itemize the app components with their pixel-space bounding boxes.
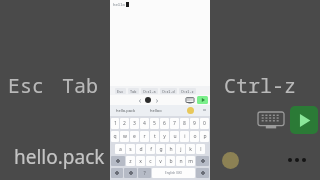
button[interactable]: Ctrl-z bbox=[179, 88, 196, 94]
button[interactable]: 8 bbox=[180, 118, 189, 129]
button[interactable]: Right bbox=[153, 97, 160, 104]
button[interactable]: Symbols bbox=[111, 168, 123, 178]
staticText: p bbox=[203, 133, 207, 140]
staticText: n bbox=[179, 158, 183, 165]
button[interactable]: g bbox=[156, 144, 165, 154]
button[interactable]: Esc bbox=[115, 88, 126, 94]
staticText: s bbox=[129, 146, 132, 153]
staticText: 1 bbox=[114, 120, 117, 127]
button[interactable]: ? bbox=[138, 168, 151, 178]
staticText: c bbox=[149, 158, 152, 165]
staticText: w bbox=[123, 133, 127, 140]
staticText: m bbox=[188, 158, 193, 165]
button[interactable]: m bbox=[186, 156, 195, 166]
staticText: u bbox=[173, 133, 177, 140]
button[interactable]: 0 bbox=[200, 118, 209, 129]
button[interactable]: c bbox=[146, 156, 155, 166]
button[interactable]: 9 bbox=[190, 118, 199, 129]
button[interactable]: s bbox=[126, 144, 135, 154]
button[interactable]: n bbox=[176, 156, 185, 166]
button[interactable]: Run bbox=[290, 106, 318, 134]
button[interactable]: q bbox=[111, 131, 119, 142]
staticText: h bbox=[169, 146, 173, 153]
staticText: 2 bbox=[123, 120, 126, 127]
button[interactable]: j bbox=[176, 144, 185, 154]
staticText: 5 bbox=[153, 120, 156, 127]
button[interactable]: Left bbox=[136, 97, 143, 104]
button[interactable]: y bbox=[160, 131, 169, 142]
button[interactable]: Select bbox=[145, 97, 151, 103]
button[interactable]: More suggestions bbox=[202, 108, 207, 113]
staticText: Ctrl-z bbox=[224, 72, 296, 99]
staticText: j bbox=[180, 146, 182, 153]
button[interactable]: h bbox=[166, 144, 175, 154]
button[interactable]: Toggle keyboard bbox=[186, 97, 194, 104]
staticText: f bbox=[150, 146, 152, 153]
button[interactable]: p bbox=[200, 131, 209, 142]
staticText: Ctrl-a bbox=[143, 89, 156, 94]
staticText: a bbox=[119, 146, 122, 153]
button[interactable]: 7 bbox=[170, 118, 179, 129]
button[interactable]: Ctrl-d bbox=[160, 88, 177, 94]
staticText: Esc bbox=[8, 72, 44, 99]
button[interactable]: i bbox=[180, 131, 189, 142]
button[interactable]: f bbox=[146, 144, 155, 154]
button[interactable]: v bbox=[156, 156, 165, 166]
button[interactable]: 3 bbox=[130, 118, 139, 129]
staticText: 4 bbox=[143, 120, 146, 127]
staticText: y bbox=[163, 133, 166, 140]
button[interactable]: 6 bbox=[160, 118, 169, 129]
button[interactable]: Backspace bbox=[196, 156, 209, 166]
button[interactable]: t bbox=[150, 131, 159, 142]
staticText: x bbox=[139, 158, 142, 165]
button[interactable]: x bbox=[136, 156, 145, 166]
button[interactable]: Space bbox=[152, 168, 195, 178]
staticText: t bbox=[154, 133, 156, 140]
staticText: 7 bbox=[173, 120, 176, 127]
button[interactable]: d bbox=[136, 144, 145, 154]
staticText: e bbox=[133, 133, 136, 140]
staticText: i bbox=[184, 133, 186, 140]
button[interactable]: Shift bbox=[111, 156, 125, 166]
button[interactable]: Emoji bbox=[124, 168, 137, 178]
button[interactable]: Run bbox=[197, 96, 208, 104]
button[interactable]: Emoji bbox=[222, 152, 239, 169]
staticText: ? bbox=[143, 170, 146, 177]
staticText: 6 bbox=[163, 120, 166, 127]
staticText: k bbox=[189, 146, 192, 153]
staticText: 9 bbox=[193, 120, 196, 127]
button[interactable]: Enter bbox=[196, 168, 209, 178]
staticText: z bbox=[129, 158, 132, 165]
button[interactable]: Tab bbox=[128, 88, 139, 94]
button[interactable]: k bbox=[186, 144, 195, 154]
staticText: Tab bbox=[130, 89, 137, 94]
button[interactable]: 1 bbox=[111, 118, 119, 129]
staticText: b bbox=[169, 158, 173, 165]
staticText: English (UK) bbox=[165, 171, 182, 175]
button[interactable]: Ctrl-a bbox=[141, 88, 158, 94]
button[interactable]: 2 bbox=[120, 118, 129, 129]
button[interactable]: o bbox=[190, 131, 199, 142]
button[interactable]: helloo bbox=[149, 107, 163, 114]
button[interactable]: z bbox=[126, 156, 135, 166]
staticText: Ctrl-z bbox=[181, 89, 194, 94]
staticText: hello.pack bbox=[116, 108, 136, 113]
button[interactable]: l bbox=[196, 144, 205, 154]
button[interactable]: hello.pack bbox=[115, 107, 137, 114]
button[interactable]: Keyboard bbox=[258, 110, 284, 130]
button[interactable]: a bbox=[115, 144, 125, 154]
staticText: hello.pack bbox=[14, 144, 105, 170]
button[interactable]: r bbox=[140, 131, 149, 142]
button[interactable]: Emoji bbox=[187, 107, 194, 114]
button[interactable]: e bbox=[130, 131, 139, 142]
staticText: 8 bbox=[183, 120, 186, 127]
button[interactable]: u bbox=[170, 131, 179, 142]
button[interactable]: b bbox=[166, 156, 175, 166]
button[interactable]: 5 bbox=[150, 118, 159, 129]
staticText: Tab bbox=[62, 72, 98, 99]
button[interactable]: w bbox=[120, 131, 129, 142]
button[interactable]: 4 bbox=[140, 118, 149, 129]
button[interactable]: More options bbox=[288, 158, 306, 162]
staticText: q bbox=[113, 133, 117, 140]
staticText: d bbox=[139, 146, 143, 153]
